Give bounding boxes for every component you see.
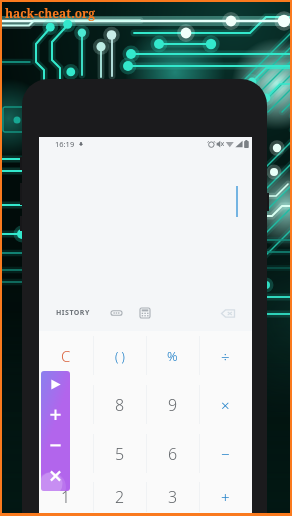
staticText: −: [221, 444, 230, 464]
staticText: 8: [115, 394, 125, 416]
button[interactable]: +: [199, 478, 252, 516]
staticText: ×: [221, 395, 230, 415]
staticText: 16:19: [55, 139, 75, 149]
staticText: HISTORY: [56, 308, 90, 318]
button[interactable]: 9: [146, 380, 199, 429]
button[interactable]: %: [146, 331, 199, 380]
staticText: %: [167, 347, 178, 365]
staticText: 6: [168, 443, 178, 465]
staticText: C: [61, 346, 71, 366]
staticText: 1: [61, 486, 71, 508]
button[interactable]: 2: [93, 478, 146, 516]
button[interactable]: ×: [199, 380, 252, 429]
button[interactable]: C: [39, 331, 93, 380]
staticText: +: [221, 487, 230, 507]
button[interactable]: Floating calculator widget: [41, 371, 70, 491]
staticText: ( ): [115, 348, 125, 364]
button[interactable]: Scientific keypad: [137, 306, 153, 320]
staticText: 7: [61, 394, 71, 416]
staticText: hack-cheat.org: [5, 5, 96, 21]
button[interactable]: 5: [93, 429, 146, 478]
button[interactable]: 4: [39, 429, 93, 478]
staticText: 3: [168, 486, 178, 508]
button[interactable]: 3: [146, 478, 199, 516]
button[interactable]: HISTORY: [54, 306, 92, 320]
button[interactable]: ÷: [199, 331, 252, 380]
staticText: 2: [115, 486, 125, 508]
button[interactable]: 8: [93, 380, 146, 429]
button[interactable]: 6: [146, 429, 199, 478]
staticText: 5: [115, 443, 125, 465]
button[interactable]: ( ): [93, 331, 146, 380]
button[interactable]: Backspace: [217, 306, 239, 320]
staticText: 4: [61, 443, 71, 465]
button[interactable]: 7: [39, 380, 93, 429]
staticText: ÷: [221, 346, 230, 366]
button[interactable]: −: [199, 429, 252, 478]
staticText: 9: [168, 394, 178, 416]
button[interactable]: 1: [39, 478, 93, 516]
button[interactable]: Angle unit: [108, 306, 124, 320]
